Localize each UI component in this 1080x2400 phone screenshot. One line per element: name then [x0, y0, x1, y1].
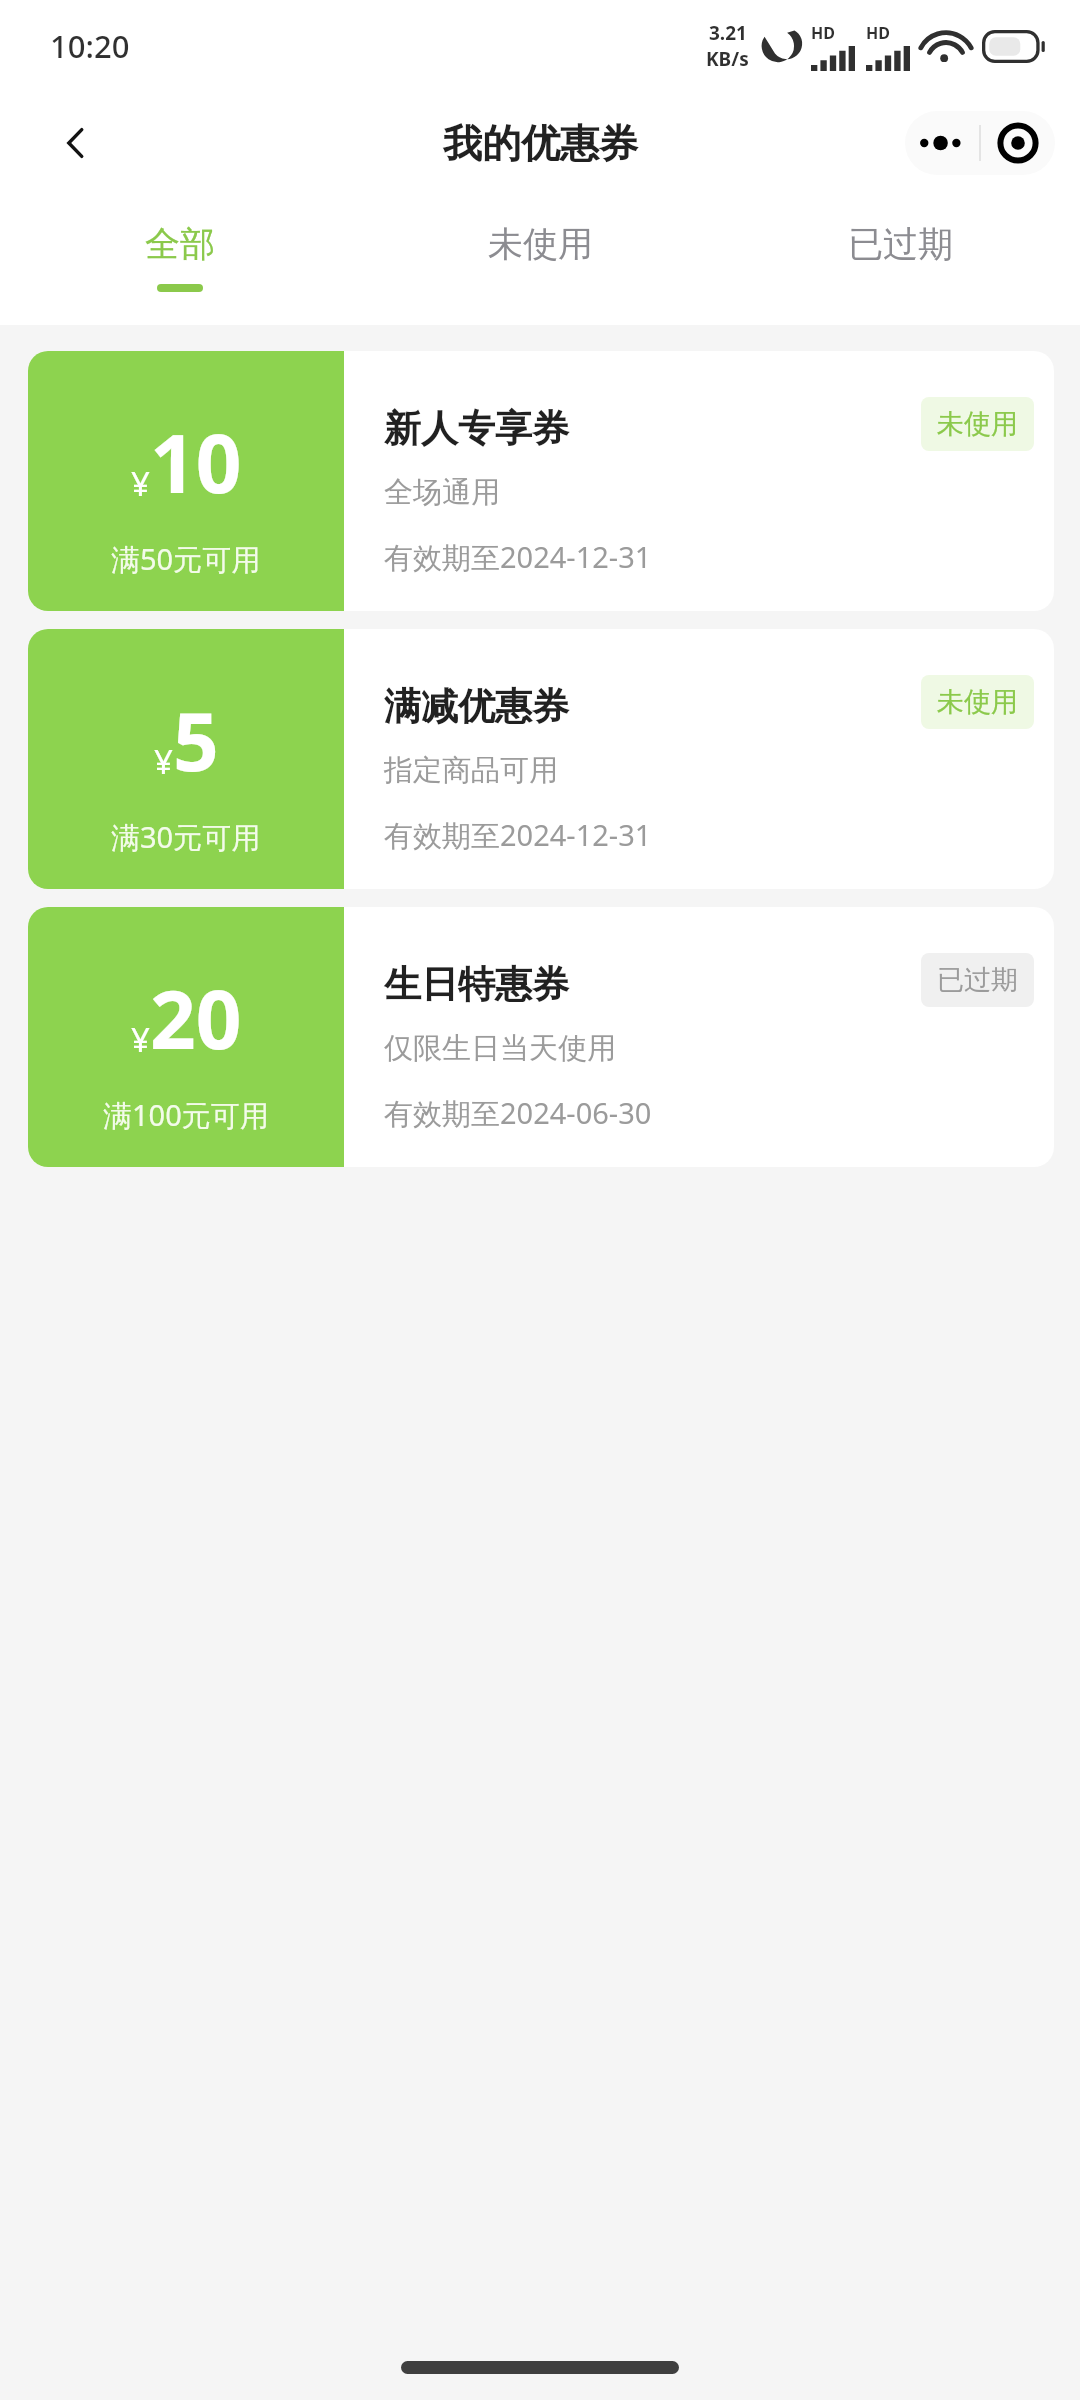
staticText: 满减优惠券 — [384, 683, 569, 730]
staticText: 全场通用 — [384, 474, 500, 511]
staticText: 未使用 — [937, 685, 1018, 719]
staticText: 有效期至2024-12-31 — [384, 537, 652, 577]
button[interactable]: ¥ — [28, 907, 1054, 1167]
staticText: ¥ — [131, 461, 150, 506]
button[interactable]: 已过期 — [720, 194, 1080, 325]
staticText: 满50元可用 — [111, 539, 261, 579]
staticText: 全部 — [145, 222, 215, 266]
button[interactable]: 全部 — [0, 194, 360, 325]
staticText: 有效期至2024-12-31 — [384, 815, 652, 855]
staticText: 3.21 — [709, 20, 747, 46]
staticText: 生日特惠券 — [384, 961, 569, 1008]
staticText: 已过期 — [937, 963, 1018, 997]
button[interactable]: Back — [38, 105, 114, 181]
button[interactable]: ¥ — [28, 351, 1054, 611]
staticText: 指定商品可用 — [384, 752, 558, 789]
staticText: ¥ — [154, 739, 173, 784]
staticText: 20 — [150, 963, 242, 1072]
button[interactable]: 未使用 — [360, 194, 720, 325]
button[interactable]: Close mini program — [981, 111, 1055, 175]
staticText: 5 — [173, 685, 219, 794]
staticText: HD — [866, 22, 890, 44]
staticText: 未使用 — [937, 407, 1018, 441]
button[interactable]: More options — [905, 111, 979, 175]
button[interactable]: ¥ — [28, 629, 1054, 889]
staticText: 10:20 — [50, 25, 130, 67]
staticText: HD — [811, 22, 835, 44]
staticText: 满100元可用 — [103, 1095, 269, 1135]
staticText: 10 — [150, 407, 242, 516]
staticText: 有效期至2024-06-30 — [384, 1093, 652, 1133]
staticText: 满30元可用 — [111, 817, 261, 857]
staticText: 未使用 — [488, 222, 593, 266]
staticText: ¥ — [131, 1017, 150, 1062]
staticText: 新人专享券 — [384, 405, 569, 452]
staticText: 仅限生日当天使用 — [384, 1030, 616, 1067]
staticText: 已过期 — [848, 222, 953, 266]
staticText: KB/s — [706, 46, 749, 72]
staticText: 我的优惠券 — [443, 119, 638, 168]
